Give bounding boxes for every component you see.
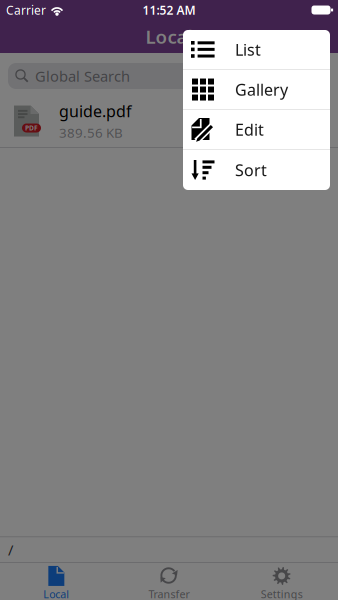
staticText: 389.56 KB bbox=[59, 124, 123, 141]
staticText: Local bbox=[43, 587, 69, 600]
staticText: Transfer bbox=[148, 587, 189, 600]
button[interactable]: Sort bbox=[183, 150, 330, 190]
button[interactable]: More options bbox=[297, 20, 338, 53]
button[interactable]: List bbox=[183, 30, 330, 70]
staticText: Settings bbox=[261, 587, 303, 600]
button[interactable]: Local bbox=[0, 563, 113, 600]
staticText: Gallery bbox=[235, 79, 288, 100]
button[interactable]: PDF bbox=[0, 95, 338, 148]
staticText: Sort bbox=[235, 159, 267, 181]
staticText: 11:52 AM bbox=[142, 2, 195, 18]
staticText: Edit bbox=[235, 119, 264, 140]
button[interactable]: Edit bbox=[183, 110, 330, 150]
staticText: guide.pdf bbox=[59, 100, 132, 122]
staticText: Global Search bbox=[35, 66, 130, 86]
staticText: Carrier bbox=[6, 2, 46, 18]
button[interactable]: Transfer bbox=[113, 563, 225, 600]
button[interactable]: Global Search bbox=[0, 63, 338, 89]
button[interactable]: Settings bbox=[225, 563, 338, 600]
staticText: PDF bbox=[25, 124, 38, 132]
button[interactable]: Gallery bbox=[183, 70, 330, 110]
staticText: Local bbox=[145, 24, 192, 49]
staticText: / bbox=[8, 540, 13, 559]
staticText: List bbox=[235, 39, 261, 60]
